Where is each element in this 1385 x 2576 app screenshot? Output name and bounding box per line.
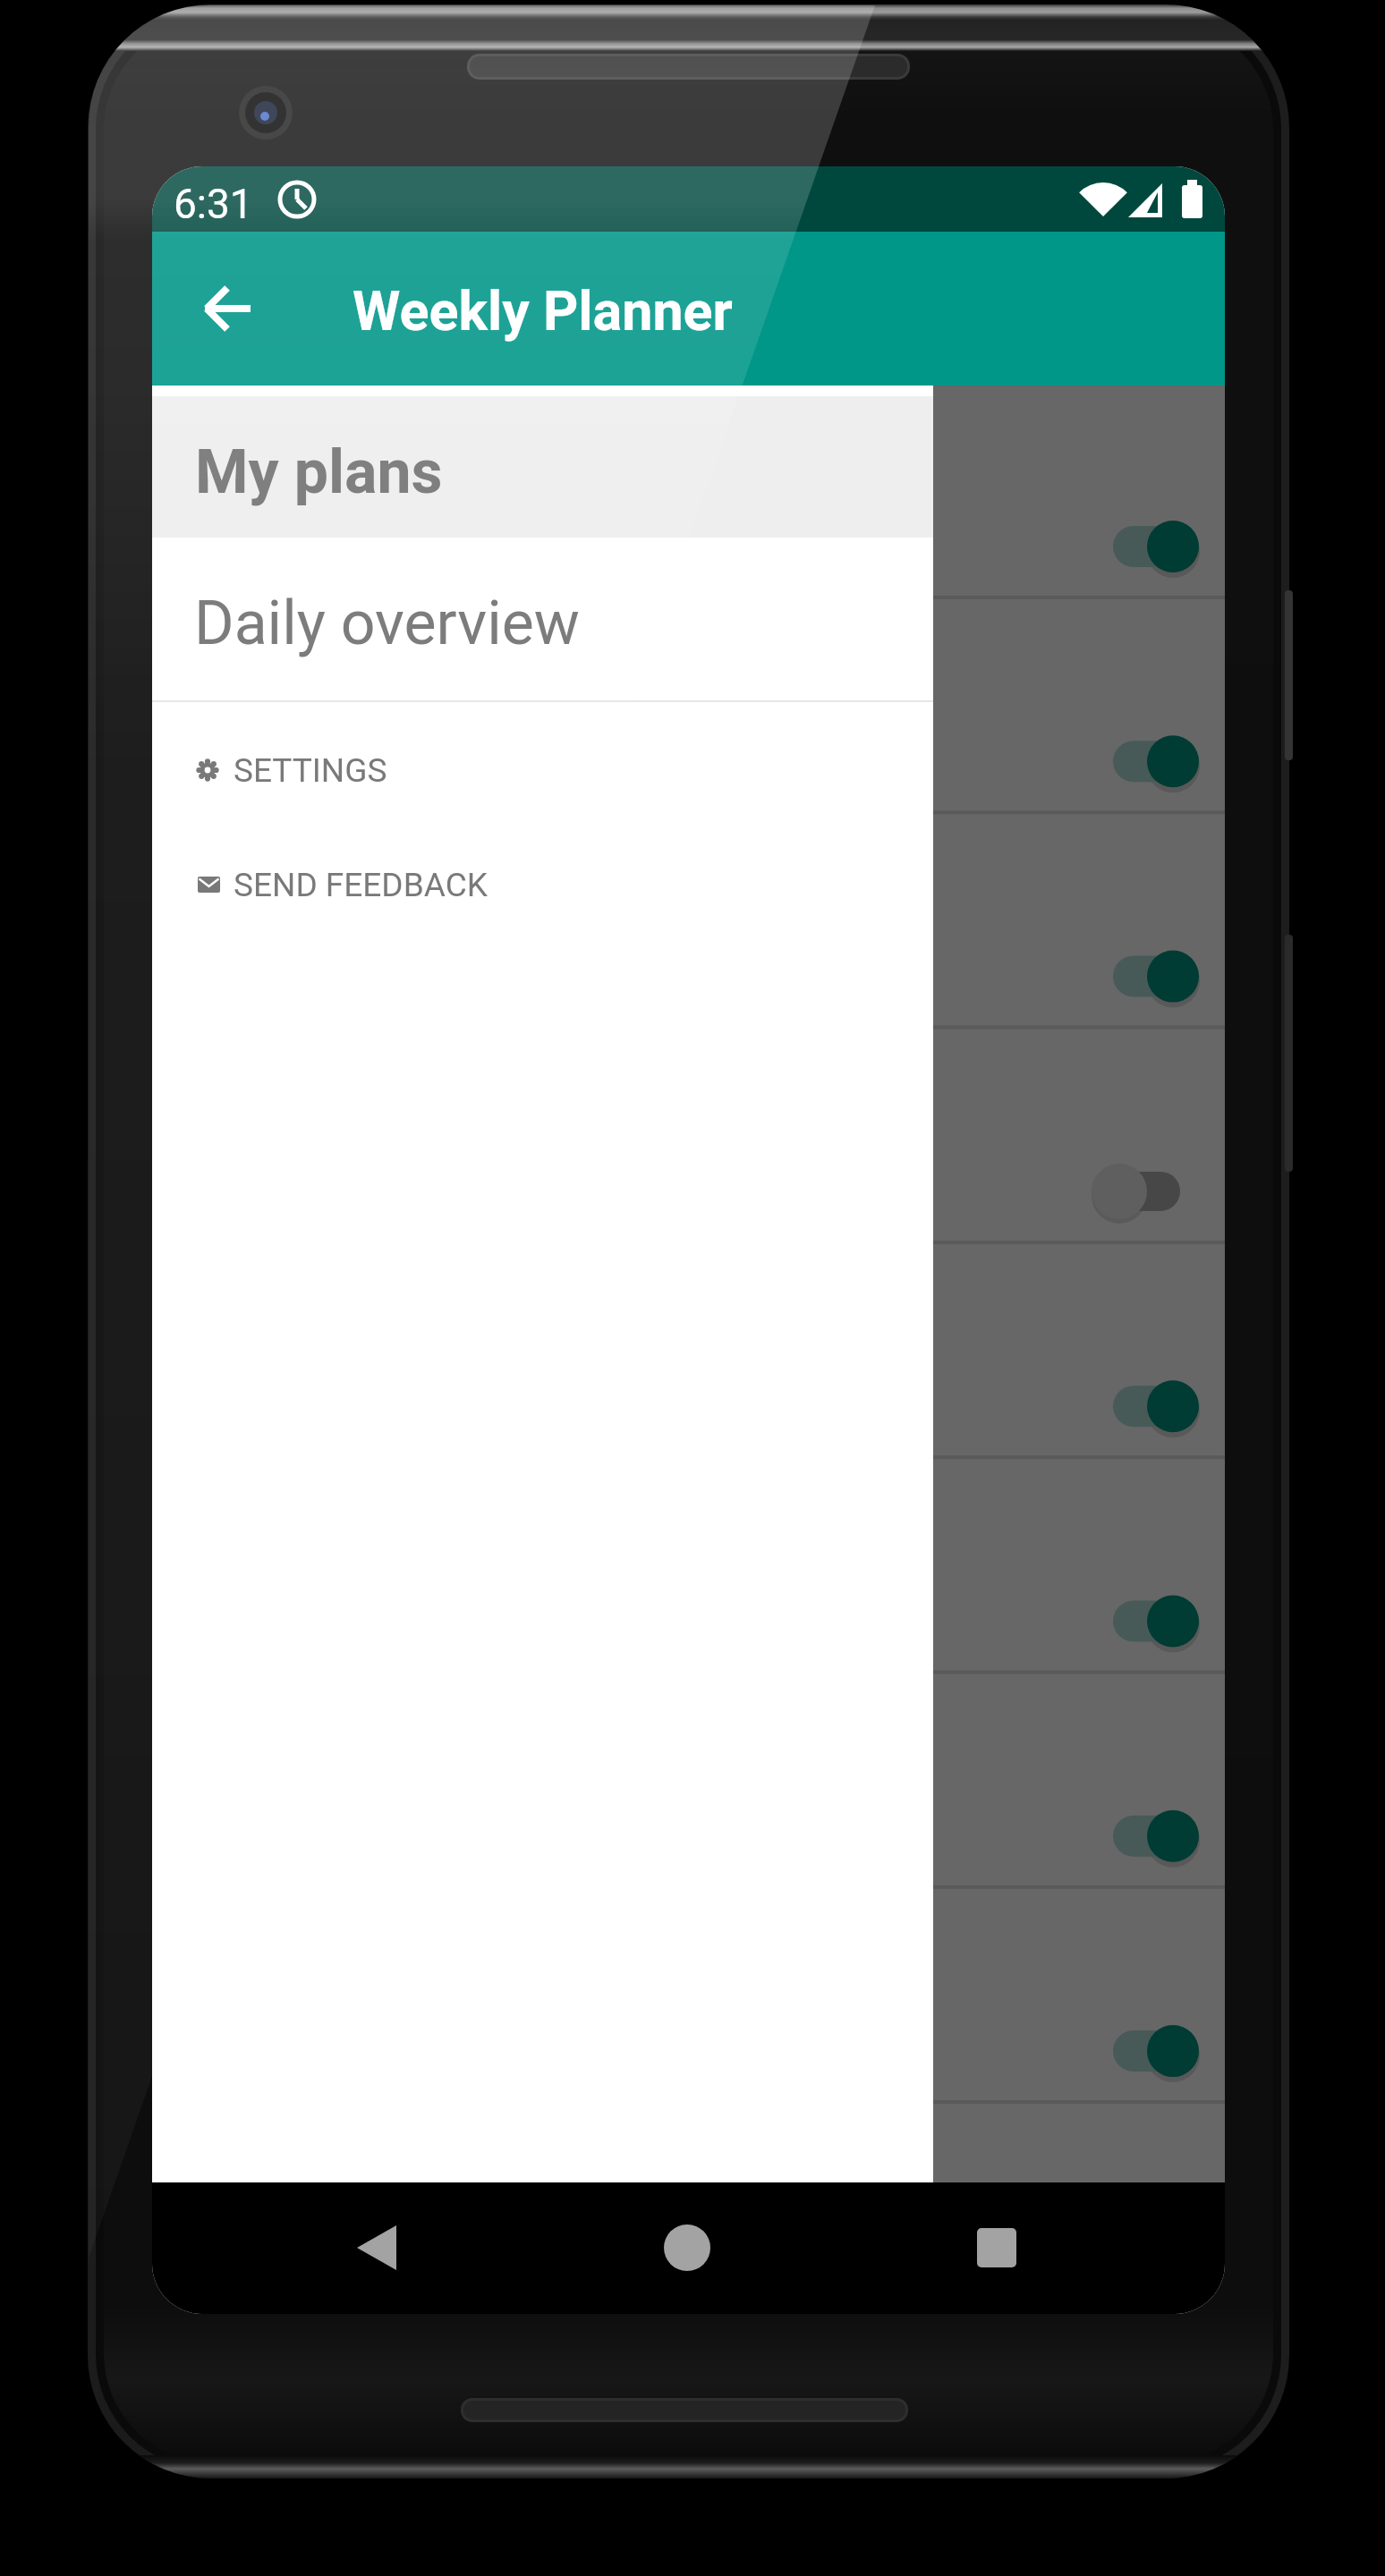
staticText: 6:31 — [174, 180, 253, 228]
staticText: Daily overview — [194, 588, 580, 659]
button[interactable]: SETTINGS — [152, 714, 933, 826]
button[interactable]: My plans — [152, 396, 933, 538]
button[interactable]: SEND FEEDBACK — [152, 828, 933, 941]
staticText: SEND FEEDBACK — [234, 866, 488, 904]
staticText: Weekly Planner — [353, 279, 733, 343]
button[interactable]: Close navigation drawer — [933, 386, 1225, 2182]
staticText: SETTINGS — [234, 751, 387, 790]
staticText: My plans — [195, 436, 443, 508]
button[interactable]: Back — [305, 2182, 448, 2314]
button[interactable]: Home — [616, 2182, 759, 2314]
button[interactable]: Back — [182, 265, 269, 352]
button[interactable]: Daily overview — [152, 538, 933, 700]
button[interactable]: Recent apps — [925, 2182, 1068, 2314]
